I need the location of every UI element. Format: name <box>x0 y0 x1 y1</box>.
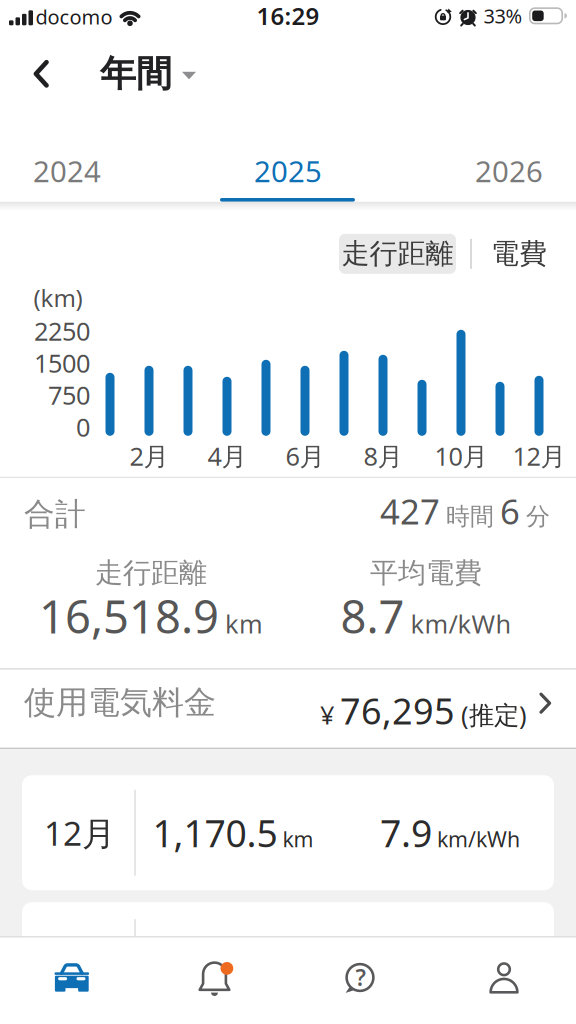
button[interactable]: My Car <box>0 938 144 1018</box>
staticText: 8.7 <box>340 586 404 646</box>
staticText: 427 <box>380 488 440 534</box>
staticText: ? <box>355 962 365 992</box>
staticText: 合計 <box>24 495 86 533</box>
staticText: 12月 <box>512 439 565 473</box>
staticText: 2月 <box>129 439 168 473</box>
staticText: 16:29 <box>256 0 319 32</box>
button[interactable]: 2024 <box>0 146 147 196</box>
staticText: km <box>225 607 263 640</box>
staticText: 76,295 <box>340 686 455 734</box>
staticText: 年間 <box>100 52 172 96</box>
staticText: 750 <box>48 378 90 412</box>
staticText: 6月 <box>285 439 324 473</box>
staticText: 12月 <box>44 811 115 855</box>
staticText: km/kWh <box>410 607 511 640</box>
staticText: 1,170.5 <box>152 808 277 857</box>
staticText: km/kWh <box>437 825 520 853</box>
staticText: km <box>282 825 313 853</box>
staticText: (推定) <box>461 698 527 731</box>
staticText: 平均電費 <box>370 556 482 590</box>
staticText: docomo <box>35 3 112 30</box>
button[interactable]: 年間 <box>100 52 196 96</box>
staticText: 走行距離 <box>341 237 453 271</box>
button[interactable]: 電費 <box>479 234 559 274</box>
staticText: 2025 <box>254 151 322 190</box>
button[interactable]: Back <box>19 49 63 99</box>
staticText: 2026 <box>475 151 543 190</box>
button[interactable]: Notifications <box>144 938 288 1018</box>
staticText: ¥ <box>320 698 334 731</box>
button[interactable]: 12月 <box>22 775 554 890</box>
staticText: 7.9 <box>380 808 432 857</box>
button[interactable]: 2026 <box>429 146 576 196</box>
button[interactable]: 2025 <box>208 146 368 196</box>
staticText: 16,518.9 <box>39 586 219 646</box>
staticText: 0 <box>76 410 90 444</box>
staticText: 電費 <box>491 237 547 271</box>
button[interactable]: 走行距離 <box>339 234 456 274</box>
staticText: 時間 <box>446 502 494 531</box>
staticText: 分 <box>526 502 550 531</box>
staticText: (km) <box>33 282 82 314</box>
staticText: 8月 <box>363 439 402 473</box>
staticText: 2024 <box>33 151 101 190</box>
staticText: 2250 <box>34 314 90 348</box>
staticText: 6 <box>500 488 520 534</box>
button[interactable]: 使用電気料金 <box>0 670 576 748</box>
staticText: 1500 <box>34 346 90 380</box>
staticText: 使用電気料金 <box>24 683 216 722</box>
staticText: 4月 <box>207 439 246 473</box>
staticText: 10月 <box>434 439 487 473</box>
staticText: 33% <box>483 2 522 29</box>
staticText: 走行距離 <box>95 556 207 590</box>
button[interactable]: Account <box>432 938 576 1018</box>
button[interactable]: Help <box>288 938 432 1018</box>
